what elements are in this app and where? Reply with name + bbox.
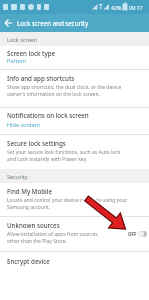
- button[interactable]: Notifications on lock screen: [0, 108, 149, 134]
- button[interactable]: Secure lock settings: [0, 135, 149, 169]
- staticText: OFF: [128, 231, 137, 237]
- button[interactable]: Info and app shortcuts: [0, 70, 149, 107]
- staticText: Info and app shortcuts: [7, 74, 75, 82]
- staticText: Lock screen: [7, 36, 38, 43]
- staticText: 09:17: [129, 4, 143, 11]
- staticText: 42%: [111, 4, 122, 11]
- button[interactable]: Screen lock type: [0, 46, 149, 69]
- button[interactable]: Encrypt device: [0, 252, 149, 268]
- staticText: Find My Mobile: [7, 187, 53, 195]
- staticText: Screen lock type: [7, 49, 56, 57]
- staticText: Unknown sources: [7, 221, 60, 229]
- staticText: Hide content: [7, 121, 41, 128]
- button[interactable]: Find My Mobile: [0, 183, 149, 216]
- staticText: Allow installation of apps from sources …: [7, 231, 98, 244]
- staticText: Pattern: [7, 57, 27, 64]
- button[interactable]: Lock screen and security: [17, 19, 89, 27]
- staticText: Notifications on lock screen: [7, 111, 89, 119]
- button[interactable]: Unknown sources: [0, 217, 149, 251]
- staticText: Locate and control your device remotely …: [7, 197, 128, 210]
- staticText: Secure lock settings: [7, 139, 66, 147]
- staticText: Set your secure lock functions, such as …: [7, 149, 121, 162]
- staticText: Encrypt device: [7, 257, 50, 265]
- staticText: Security: [7, 173, 28, 180]
- staticText: Show app shortcuts, the dual clock, or t…: [7, 84, 122, 97]
